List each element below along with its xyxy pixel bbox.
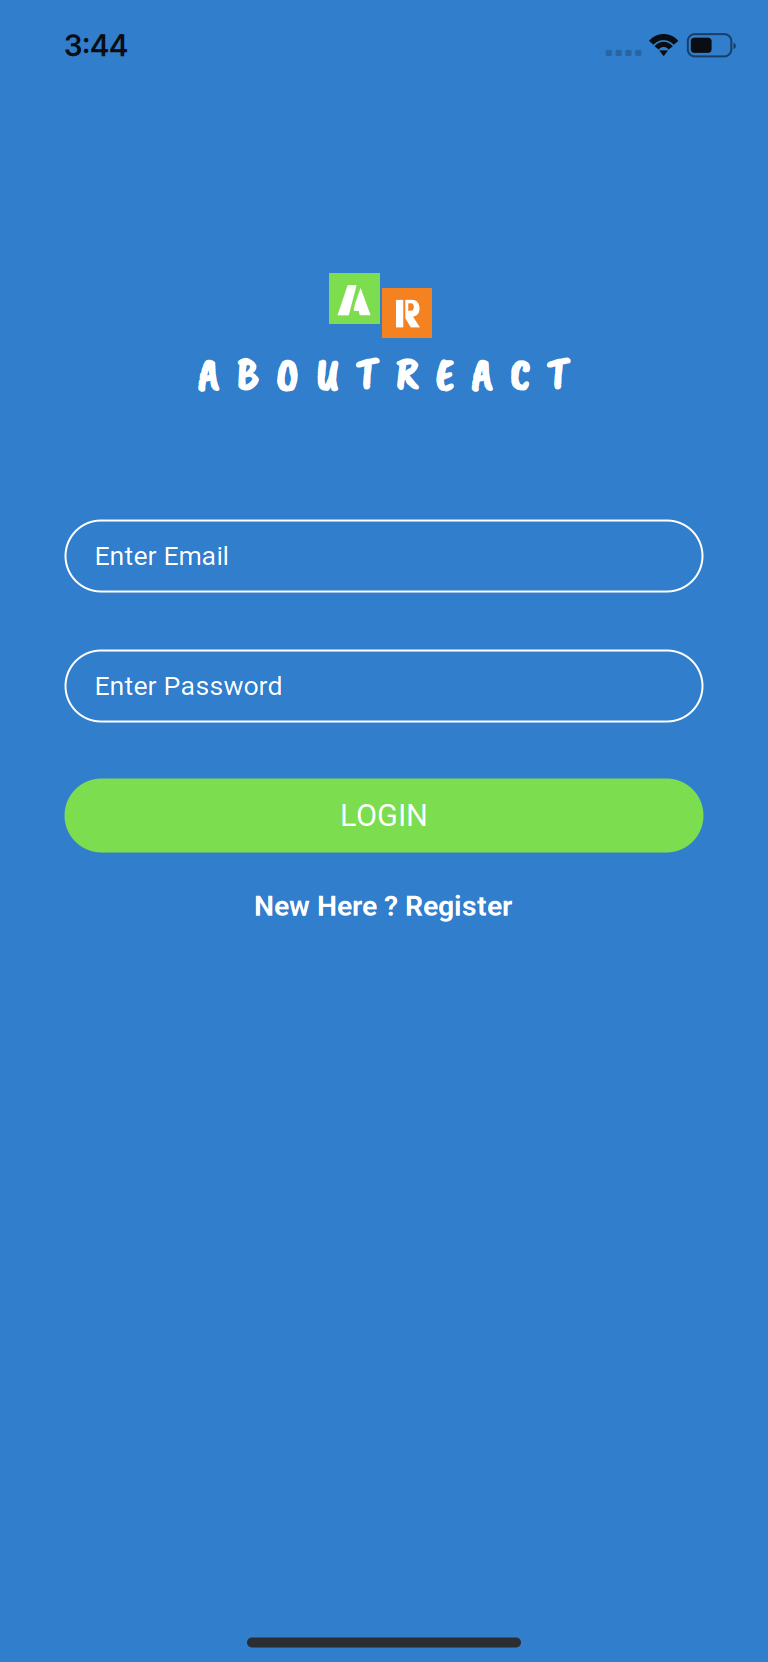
- staticText: 3:44: [64, 28, 128, 63]
- button[interactable]: Enter Password: [65, 650, 702, 721]
- staticText: LOGIN: [340, 797, 428, 833]
- button[interactable]: Enter Email: [65, 520, 702, 591]
- staticText: Enter Password: [94, 670, 282, 702]
- staticText: New Here ? Register: [254, 889, 512, 923]
- button[interactable]: LOGIN: [64, 778, 703, 852]
- button[interactable]: New Here ? Register: [242, 880, 524, 932]
- staticText: Enter Email: [94, 540, 228, 572]
- staticText: ABOUTREACT: [197, 346, 568, 403]
